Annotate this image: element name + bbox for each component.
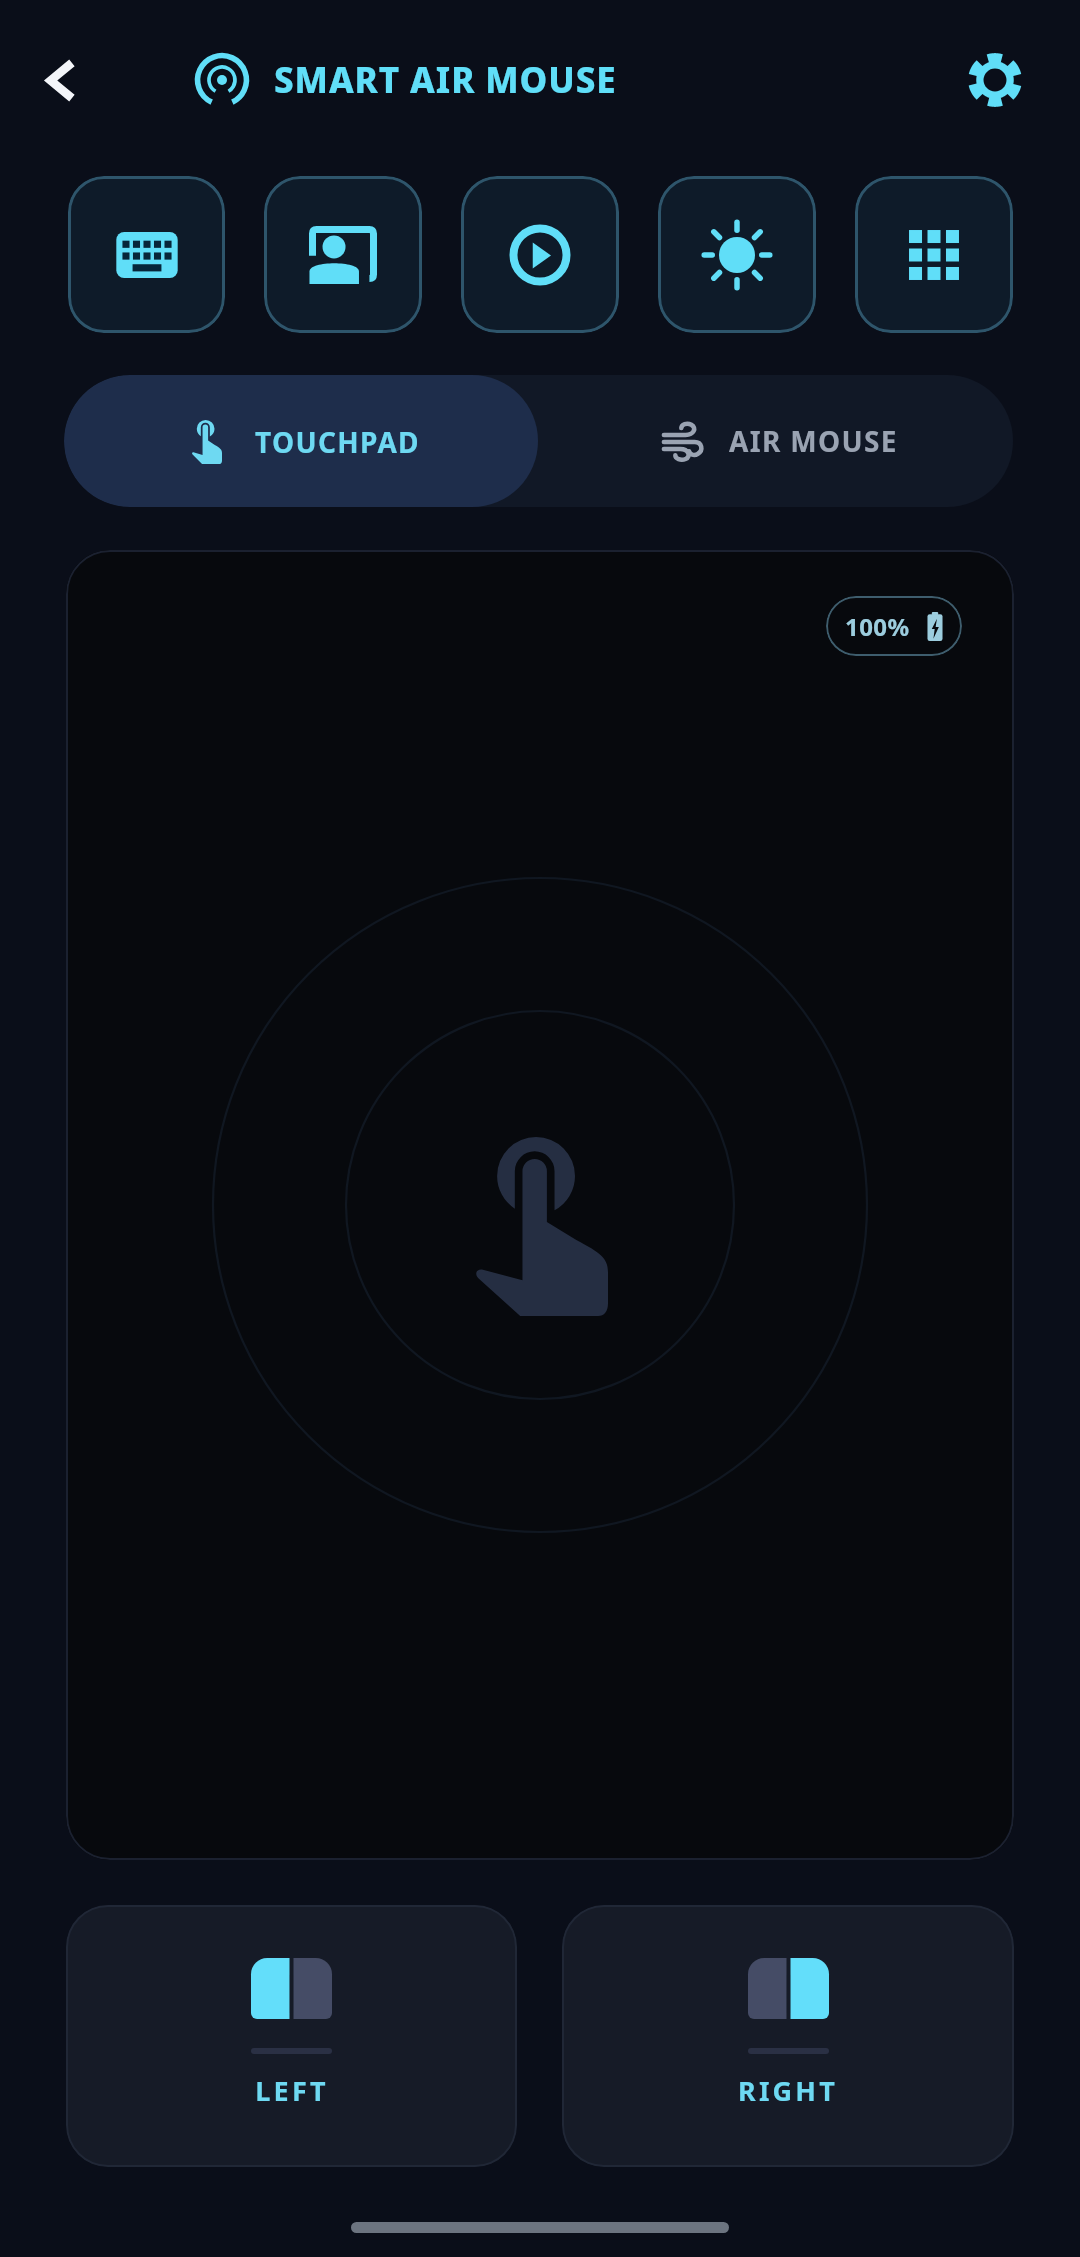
staticText: TOUCHPAD bbox=[255, 423, 420, 461]
button[interactable]: Battery 100 percent bbox=[826, 596, 962, 656]
staticText: LEFT bbox=[255, 2072, 329, 2109]
button[interactable]: RIGHT bbox=[562, 1905, 1014, 2167]
button[interactable]: Back bbox=[27, 46, 95, 114]
button[interactable]: Brightness bbox=[658, 176, 816, 333]
button[interactable]: Screen mirroring bbox=[264, 176, 422, 333]
staticText: AIR MOUSE bbox=[729, 422, 898, 460]
staticText: RIGHT bbox=[738, 2072, 838, 2109]
button[interactable]: Touchpad area bbox=[66, 550, 1014, 1860]
button[interactable]: Keyboard bbox=[68, 176, 225, 333]
button[interactable]: LEFT bbox=[66, 1905, 517, 2167]
staticText: 100% bbox=[845, 610, 910, 643]
button[interactable]: Apps bbox=[855, 176, 1013, 333]
button[interactable]: TOUCHPAD bbox=[64, 375, 538, 507]
button[interactable]: Media bbox=[461, 176, 619, 333]
button[interactable]: Settings bbox=[957, 42, 1033, 118]
button[interactable]: AIR MOUSE bbox=[538, 375, 1013, 507]
staticText: SMART AIR MOUSE bbox=[274, 56, 617, 104]
